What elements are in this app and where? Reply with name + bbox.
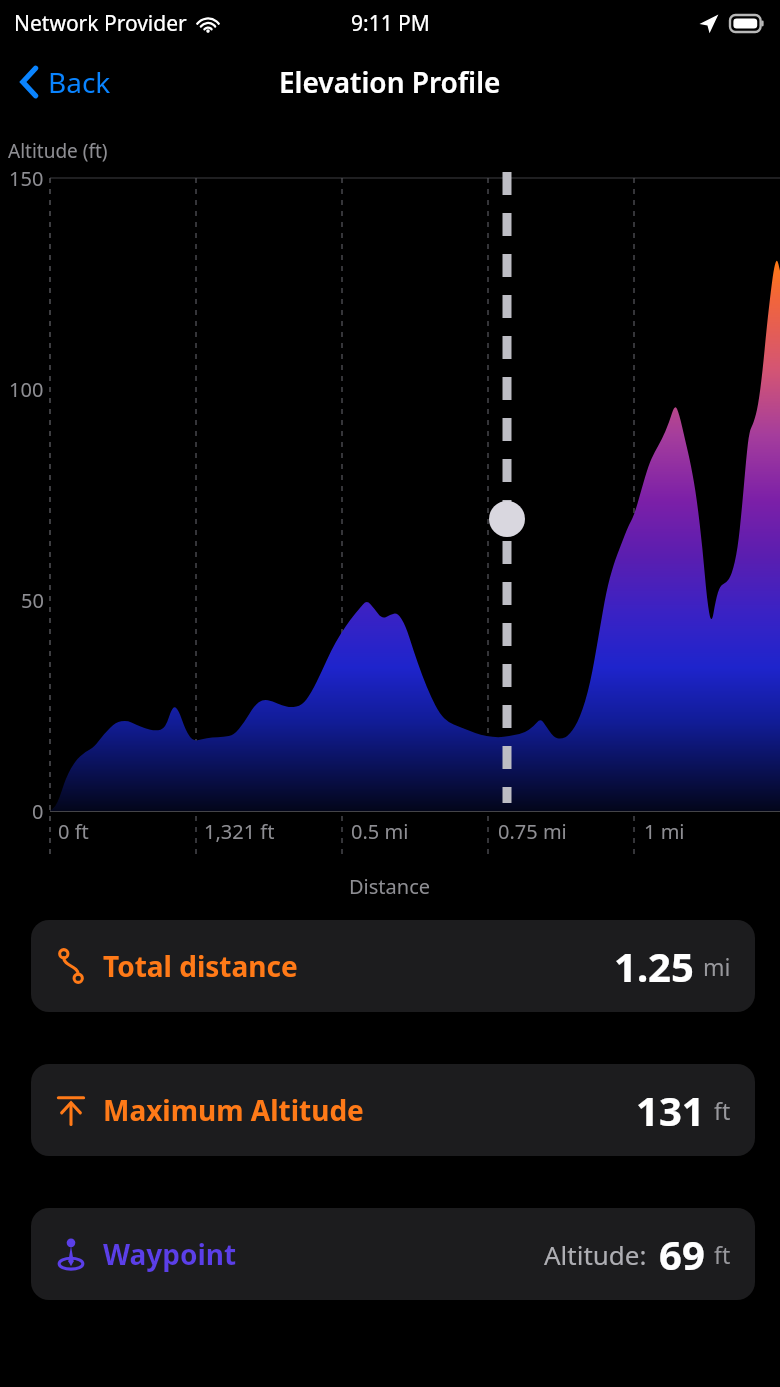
staticText: 1.25 [614,939,694,993]
staticText: 9:11 PM [351,9,430,38]
staticText: 1,321 ft [204,818,275,845]
staticText: ft [714,1095,731,1126]
staticText: Total distance [103,947,298,985]
staticText: 69 [659,1227,705,1281]
staticText: 100 [9,376,44,403]
button[interactable]: Waypoint [31,1208,755,1300]
staticText: Elevation Profile [279,63,501,101]
staticText: 0 ft [58,818,89,845]
other: Waypoint [53,1236,89,1272]
staticText: mi [703,951,731,982]
button[interactable]: Back [12,55,119,109]
button[interactable]: Total distance [31,920,755,1012]
staticText: Altitude: [544,1237,647,1272]
staticText: Altitude (ft) [8,138,108,164]
staticText: Network Provider [14,9,187,38]
staticText: 150 [9,165,44,192]
staticText: 131 [636,1083,705,1137]
button[interactable]: Maximum Altitude [31,1064,755,1156]
staticText: 0 [32,798,44,825]
other: Total distance [53,948,89,984]
staticText: Maximum Altitude [103,1091,364,1129]
staticText: Distance [349,873,431,900]
staticText: 50 [21,587,44,614]
staticText: Waypoint [103,1235,237,1273]
staticText: 1 mi [644,818,685,845]
other: Maximum Altitude [53,1092,89,1128]
staticText: 0.5 mi [351,818,409,845]
staticText: ft [714,1239,731,1270]
staticText: 0.75 mi [498,818,567,845]
staticText: Back [48,63,111,101]
